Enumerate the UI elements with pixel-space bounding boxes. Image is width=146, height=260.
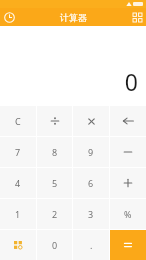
staticText: 1 [15, 208, 21, 220]
button[interactable]: % [110, 199, 146, 229]
staticText: . [90, 239, 93, 251]
staticText: 计算器 [60, 12, 87, 23]
staticText: 2 [52, 208, 58, 220]
button[interactable]: 7 [0, 137, 36, 167]
button[interactable]: C [0, 106, 36, 136]
button[interactable]: Plus [110, 168, 146, 198]
button[interactable]: 5 [37, 168, 72, 198]
button[interactable]: 8 [37, 137, 72, 167]
staticText: % [124, 208, 132, 220]
button[interactable]: 2 [37, 199, 72, 229]
staticText: 3 [88, 208, 94, 220]
staticText: 7 [15, 146, 21, 158]
staticText: 4 [15, 177, 21, 189]
staticText: 5 [52, 177, 58, 189]
button[interactable]: 1 [0, 199, 36, 229]
button[interactable]: 0 [37, 230, 72, 260]
button[interactable]: History [0, 8, 18, 26]
button[interactable]: Equals [110, 230, 146, 260]
button[interactable]: 4 [0, 168, 36, 198]
staticText: C [15, 115, 21, 127]
button[interactable]: 9 [73, 137, 109, 167]
button[interactable]: 6 [73, 168, 109, 198]
button[interactable]: Backspace [110, 106, 146, 136]
staticText: 9 [88, 146, 94, 158]
staticText: 8 [52, 146, 58, 158]
staticText: 6 [88, 177, 94, 189]
button[interactable]: Divide [37, 106, 72, 136]
button[interactable]: 3 [73, 199, 109, 229]
staticText: 0 [52, 239, 58, 251]
staticText: 0 [124, 66, 138, 97]
button[interactable]: Minus [110, 137, 146, 167]
button[interactable]: More tools [128, 8, 146, 26]
button[interactable]: Unit converter [0, 230, 36, 260]
button[interactable]: Multiply [73, 106, 109, 136]
